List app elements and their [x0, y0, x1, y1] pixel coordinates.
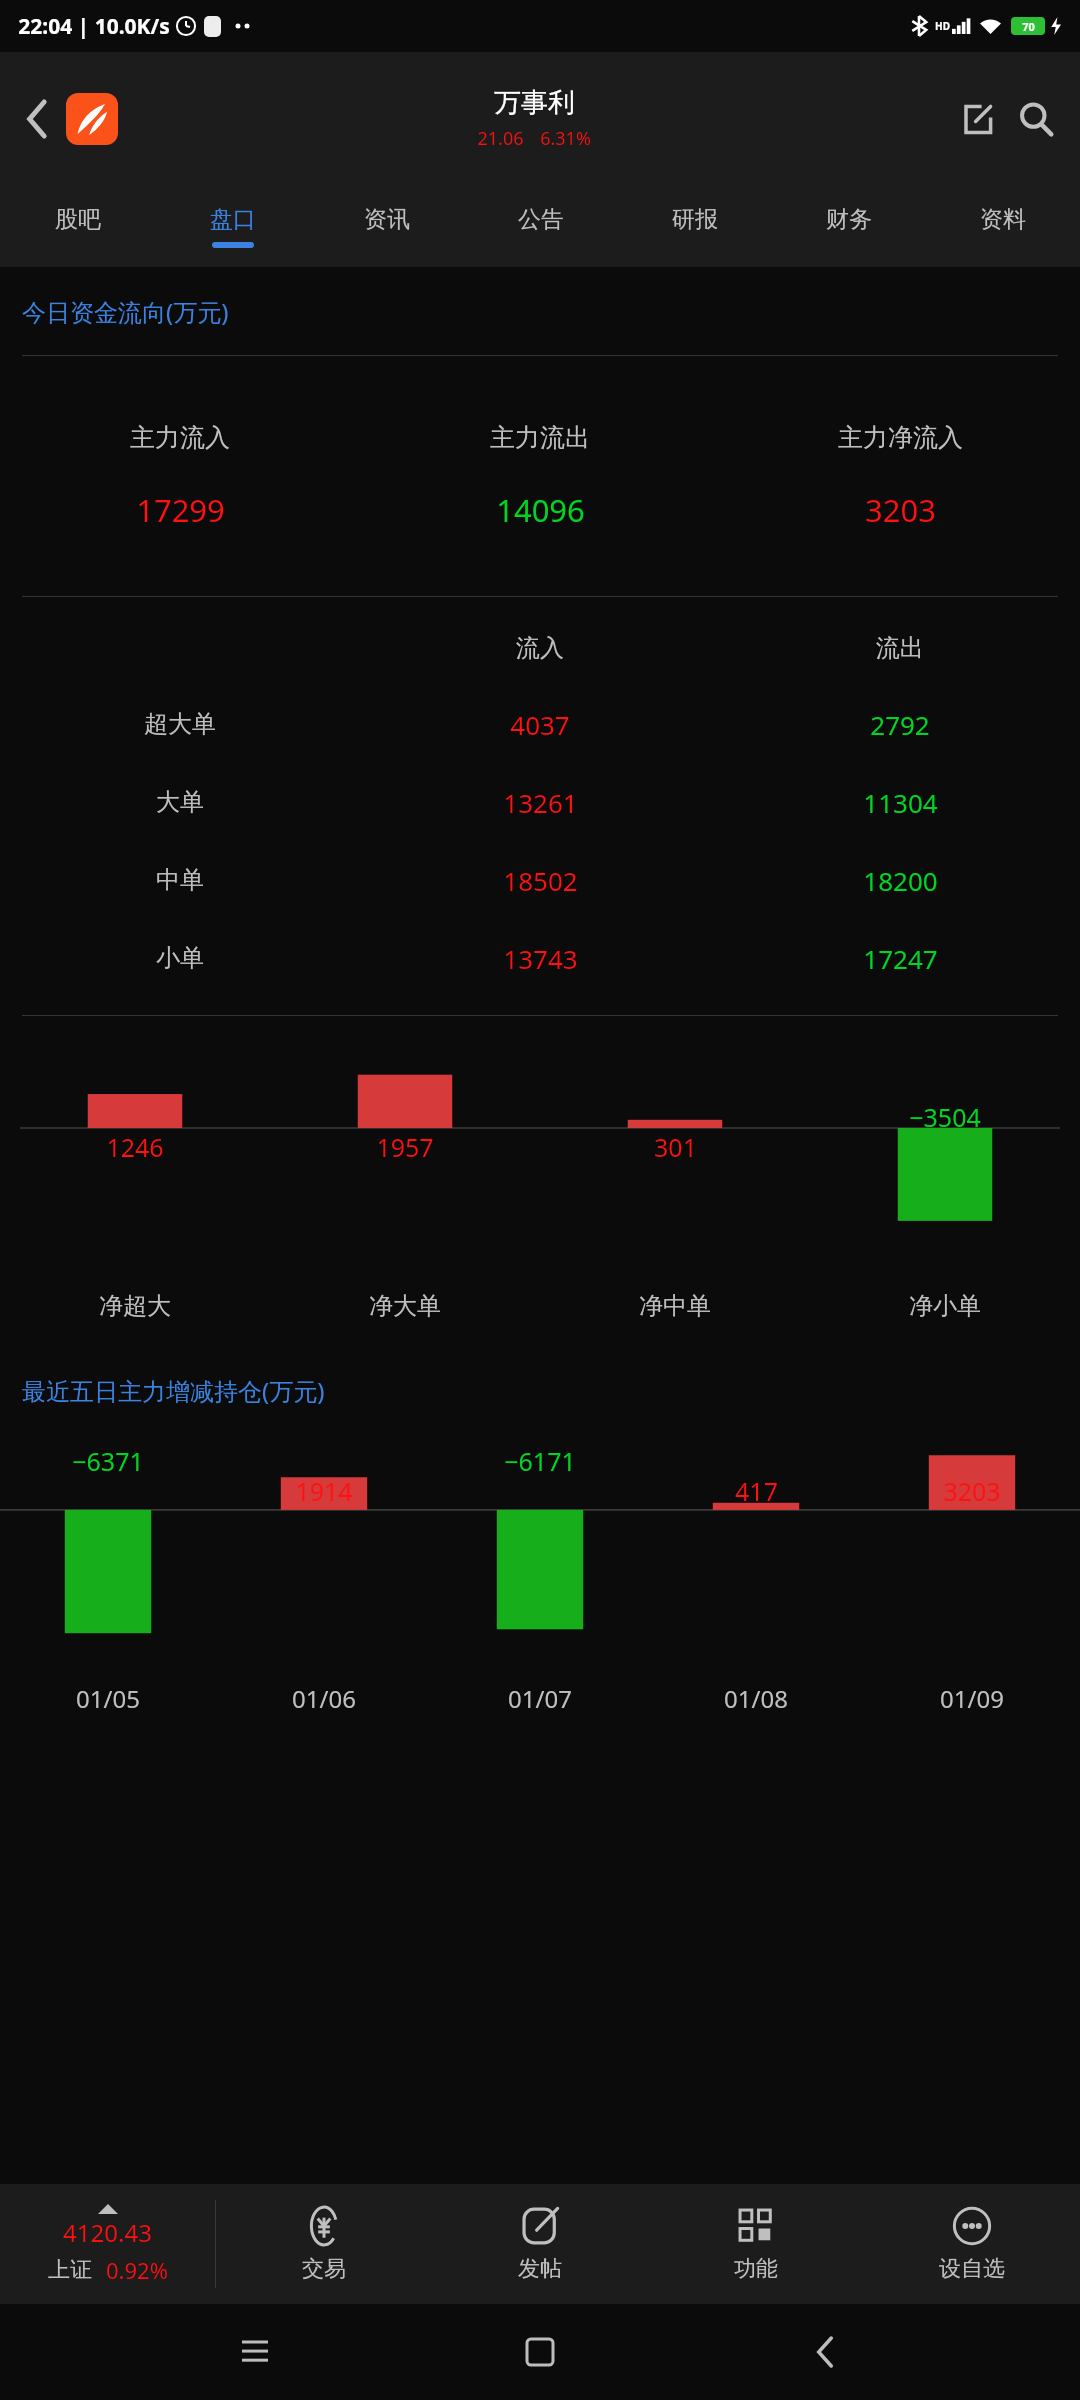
staticText: 17247	[863, 941, 938, 976]
staticText: 01/09	[940, 1682, 1004, 1715]
staticText: HD	[935, 19, 950, 33]
staticText: 最近五日主力增减持仓(万元)	[22, 1374, 325, 1407]
staticText: 资讯	[364, 205, 410, 234]
staticText: 中单	[156, 865, 204, 895]
staticText: 1246	[106, 1130, 164, 1164]
staticText: 发帖	[518, 2255, 562, 2283]
staticText: 301	[654, 1130, 697, 1164]
staticText: 18200	[863, 863, 938, 898]
button[interactable]: 资讯	[310, 185, 464, 267]
button[interactable]: Share	[950, 91, 1006, 147]
staticText: 净超大	[99, 1291, 171, 1321]
staticText: 财务	[826, 205, 872, 234]
staticText: 2792	[870, 707, 930, 742]
staticText: 13261	[503, 785, 578, 820]
staticText: 净中单	[639, 1291, 711, 1321]
staticText: 3203	[943, 1474, 1001, 1508]
button[interactable]: 设自选	[864, 2184, 1080, 2304]
staticText: 流出	[876, 633, 924, 663]
staticText: 01/07	[508, 1682, 572, 1715]
staticText: 今日资金流向(万元)	[22, 295, 229, 328]
staticText: 主力净流入	[838, 422, 963, 453]
button[interactable]: 公告	[464, 185, 618, 267]
staticText: 股吧	[55, 205, 101, 234]
staticText: 上证	[48, 2256, 92, 2284]
staticText: 01/06	[292, 1682, 356, 1715]
staticText: 417	[735, 1474, 778, 1508]
staticText: 流入	[516, 633, 564, 663]
staticText: 11304	[863, 785, 938, 820]
staticText: −3504	[909, 1100, 981, 1134]
button[interactable]: 交易	[216, 2184, 432, 2304]
staticText: 70	[1022, 19, 1035, 34]
button[interactable]: Back	[795, 2322, 855, 2382]
button[interactable]: 4120.43	[0, 2184, 215, 2304]
button[interactable]: 盘口	[155, 185, 310, 267]
staticText: 超大单	[144, 709, 216, 739]
staticText: 资料	[980, 205, 1026, 234]
button[interactable]: 股吧	[0, 185, 155, 267]
staticText: 净小单	[909, 1291, 981, 1321]
staticText: 1957	[376, 1130, 434, 1164]
staticText: 01/05	[76, 1682, 140, 1715]
staticText: 设自选	[939, 2255, 1005, 2283]
staticText: 3203	[865, 489, 936, 531]
button[interactable]: 功能	[648, 2184, 864, 2304]
staticText: 净大单	[369, 1291, 441, 1321]
button[interactable]: 研报	[618, 185, 772, 267]
staticText: 17299	[136, 489, 225, 531]
button[interactable]: Recents	[225, 2322, 285, 2382]
button[interactable]: Search	[1006, 89, 1066, 149]
staticText: 13743	[503, 941, 578, 976]
staticText: 01/08	[724, 1682, 788, 1715]
button[interactable]: 资料	[926, 185, 1080, 267]
staticText: 小单	[156, 943, 204, 973]
staticText: 公告	[518, 205, 564, 234]
staticText: 主力流出	[490, 422, 590, 453]
staticText: 4120.43	[63, 2216, 152, 2249]
staticText: 21.06	[477, 126, 524, 151]
staticText: 大单	[156, 787, 204, 817]
staticText: 6.31%	[540, 126, 591, 151]
staticText: 盘口	[210, 205, 256, 234]
staticText: 万事利	[494, 86, 575, 120]
staticText: −6171	[504, 1444, 576, 1478]
button[interactable]: Home	[510, 2322, 570, 2382]
staticText: 14096	[496, 489, 585, 531]
button[interactable]: 财务	[772, 185, 926, 267]
staticText: 18502	[503, 863, 578, 898]
staticText: 研报	[672, 205, 718, 234]
staticText: 功能	[734, 2255, 778, 2283]
staticText: 22:04 | 10.0K/s	[18, 12, 170, 41]
staticText: −6371	[72, 1444, 144, 1478]
staticText: 4037	[510, 707, 570, 742]
staticText: 1914	[295, 1474, 353, 1508]
button[interactable]: 发帖	[432, 2184, 648, 2304]
button[interactable]: Back	[14, 95, 62, 143]
button[interactable]: App logo	[66, 93, 118, 145]
staticText: 主力流入	[130, 422, 230, 453]
staticText: 0.92%	[106, 2255, 168, 2285]
staticText: 交易	[302, 2255, 346, 2283]
